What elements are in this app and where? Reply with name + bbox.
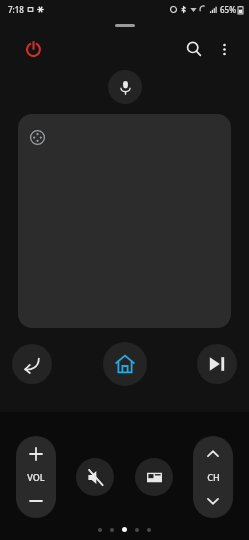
staticText: 65% (220, 4, 236, 15)
button[interactable]: Input source (135, 458, 173, 496)
button[interactable]: Touchpad (18, 114, 231, 328)
button[interactable]: More options (209, 34, 239, 64)
button[interactable]: Back (12, 344, 52, 384)
button[interactable]: Power (18, 34, 48, 64)
staticText: 7:18 (8, 4, 24, 15)
button[interactable]: Switch to D-pad (26, 126, 48, 148)
button[interactable]: VOL (16, 436, 56, 518)
button[interactable]: Search (179, 34, 209, 64)
button[interactable]: Home (103, 342, 147, 386)
staticText: CH (207, 471, 220, 483)
staticText: VOL (27, 471, 45, 483)
button[interactable]: Play or pause (197, 344, 237, 384)
button[interactable]: Mute (76, 458, 114, 496)
button[interactable]: CH (193, 436, 233, 518)
button[interactable]: Voice search (108, 70, 142, 104)
